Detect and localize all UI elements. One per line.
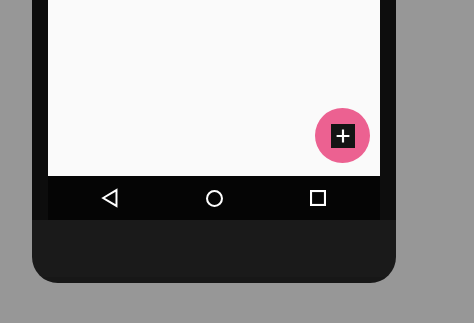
button[interactable]: Recents [296,176,340,220]
button[interactable]: Back [88,176,132,220]
button[interactable]: Home [192,176,236,220]
button[interactable]: Add [315,108,370,163]
